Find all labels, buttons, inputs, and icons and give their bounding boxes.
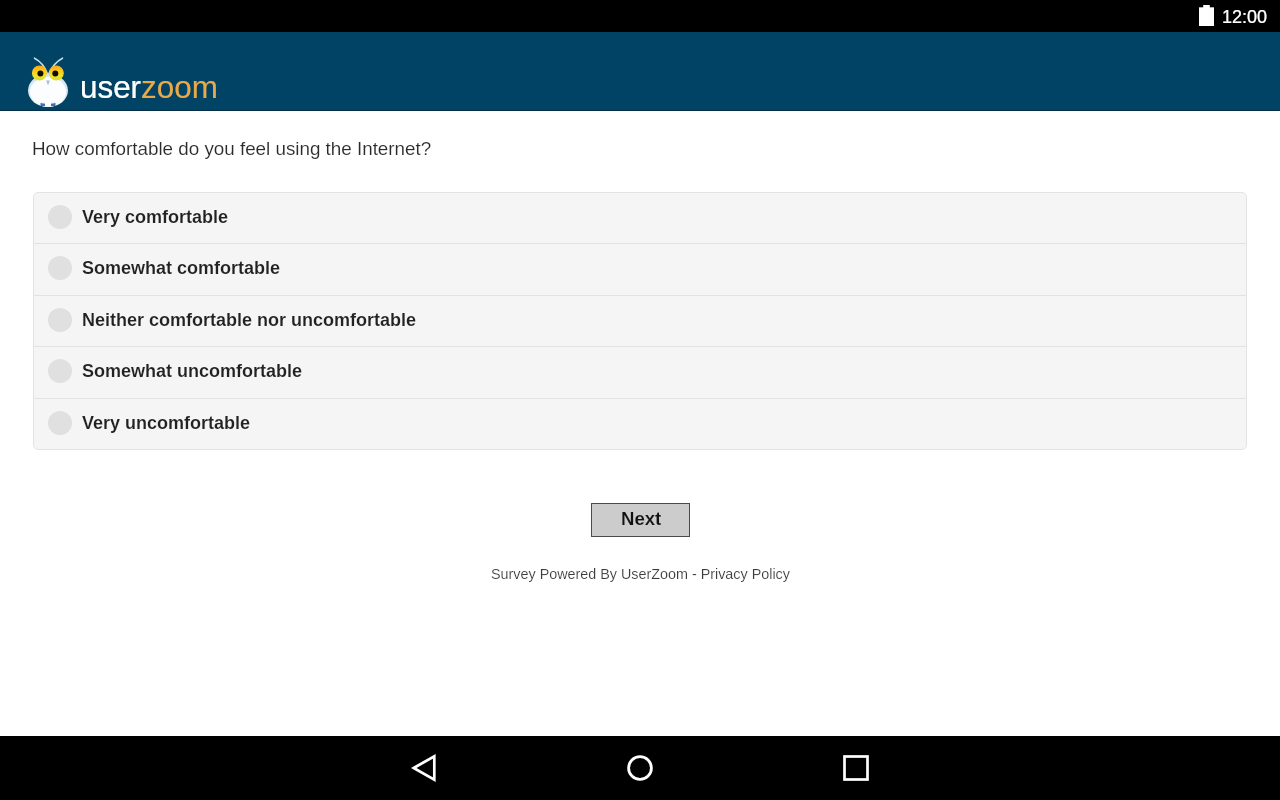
button[interactable]: Next	[591, 503, 690, 537]
button[interactable]: Somewhat uncomfortable	[33, 347, 1247, 398]
button[interactable]: Neither comfortable nor uncomfortable	[33, 296, 1247, 347]
staticText: 12:00	[1222, 7, 1268, 27]
staticText: Very uncomfortable	[82, 413, 251, 433]
staticText: Neither comfortable nor uncomfortable	[82, 310, 417, 330]
staticText: How comfortable do you feel using the In…	[32, 138, 432, 159]
staticText: Very comfortable	[82, 207, 229, 227]
staticText: Survey Powered By UserZoom - Privacy Pol…	[491, 566, 790, 582]
staticText: Somewhat uncomfortable	[82, 361, 303, 381]
button[interactable]: Home	[614, 742, 666, 794]
staticText: Next	[621, 508, 662, 529]
staticText: userzoom	[80, 70, 218, 105]
staticText: Somewhat comfortable	[82, 258, 281, 278]
button[interactable]: Very comfortable	[33, 193, 1247, 244]
button[interactable]: Somewhat comfortable	[33, 244, 1247, 295]
button[interactable]: Very uncomfortable	[33, 399, 1247, 450]
button[interactable]: Back	[398, 742, 450, 794]
button[interactable]: Recent apps	[830, 742, 882, 794]
